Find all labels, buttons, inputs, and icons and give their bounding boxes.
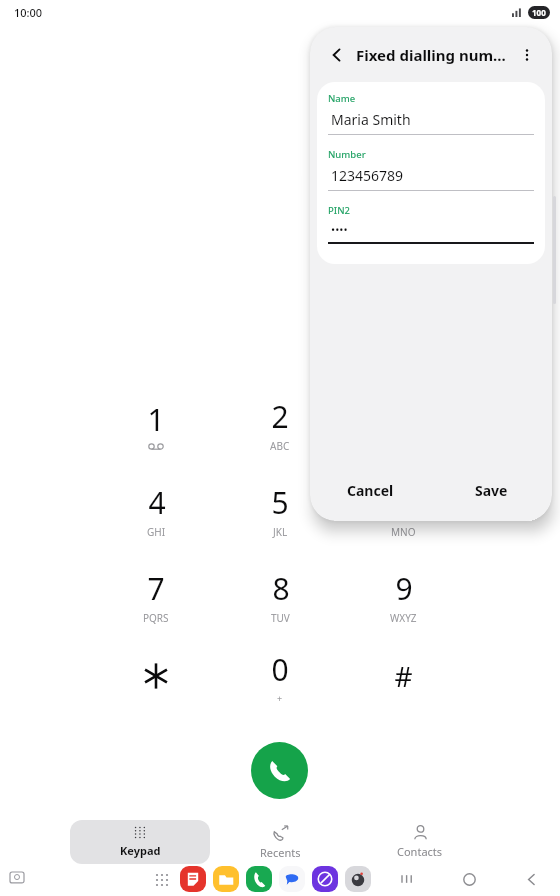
button[interactable]: Camera [345,866,371,892]
staticText: TUV [271,611,290,625]
button[interactable]: 5 [224,468,336,552]
staticText: Save [475,481,508,500]
button[interactable]: Internet [312,866,338,892]
button[interactable]: 8 [224,554,336,638]
button[interactable]: Recents [387,864,427,894]
button[interactable]: 0 [224,634,336,718]
staticText: 4 [148,482,166,523]
staticText: 6 [395,482,413,523]
staticText: GHI [147,525,166,539]
button[interactable]: 2 [224,382,336,466]
staticText: 0 [271,649,289,690]
staticText: Cancel [347,481,394,500]
staticText: 1 [147,399,165,440]
staticText: PQRS [143,611,169,625]
staticText: 123456789 [331,166,404,185]
staticText: ABC [270,439,290,453]
staticText: •••• [331,222,348,237]
staticText: + [277,692,283,704]
button[interactable]: Capture [0,862,34,896]
button[interactable]: More options [514,42,540,68]
button[interactable]: Back [511,864,551,894]
button[interactable]: Files [213,866,239,892]
button[interactable]: Save [431,459,552,521]
staticText: 10:00 [14,5,43,20]
button[interactable]: Contacts [350,820,490,864]
button[interactable]: Call [251,742,308,799]
staticText: Number [328,148,366,161]
staticText: # [394,657,413,695]
button[interactable]: Messages [279,866,305,892]
button[interactable]: 7 [100,554,212,638]
button[interactable] [100,634,212,718]
staticText: 7 [147,568,165,609]
button[interactable]: # [347,634,459,718]
button[interactable]: 9 [347,554,459,638]
staticText: Contacts [397,844,443,859]
staticText: PIN2 [328,204,350,217]
staticText: 100 [532,7,546,18]
staticText: Name [328,92,356,105]
button[interactable]: Back [324,42,350,68]
button[interactable]: Apps [148,866,176,894]
staticText: Keypad [120,843,161,858]
button[interactable]: Recents [210,820,350,864]
staticText: 8 [272,568,290,609]
button[interactable]: Home [449,864,489,894]
button[interactable]: Notes [180,866,206,892]
staticText: Fixed dialling num... [356,45,506,65]
button[interactable]: Keypad [70,820,210,864]
staticText: 5 [271,482,289,523]
staticText: 2 [271,396,289,437]
button[interactable]: 4 [100,468,212,552]
staticText: JKL [273,525,288,539]
staticText: MNO [391,525,416,539]
button[interactable]: Cancel [310,459,431,521]
staticText: Recents [260,845,301,860]
staticText: Maria Smith [331,110,411,129]
staticText: 9 [395,568,413,609]
button[interactable]: 6 [347,468,459,552]
button[interactable]: 1 [100,382,212,466]
button[interactable]: Phone [246,866,272,892]
staticText: WXYZ [390,611,417,625]
